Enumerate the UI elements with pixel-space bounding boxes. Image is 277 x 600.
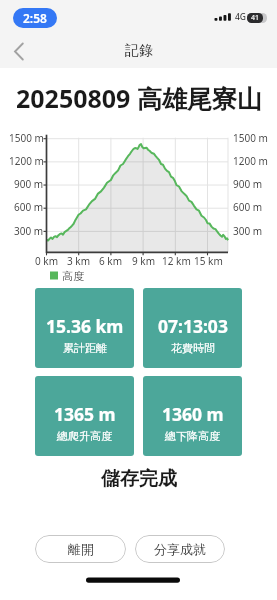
staticText: 600 m — [14, 200, 44, 214]
staticText: 1365 m — [54, 402, 116, 426]
button[interactable]: 07:13:03 — [143, 288, 242, 368]
staticText: 分享成就 — [154, 541, 206, 557]
staticText: 1500 m — [233, 131, 268, 145]
staticText: 20250809 高雄尾寮山 — [16, 81, 262, 115]
staticText: 1200 m — [9, 154, 44, 168]
staticText: 600 m — [233, 200, 263, 214]
button[interactable]: 分享成就 — [135, 535, 225, 563]
staticText: 高度 — [62, 269, 84, 283]
button[interactable]: 15.36 km — [35, 288, 134, 368]
staticText: 900 m — [233, 177, 263, 191]
button[interactable]: 離開 — [35, 535, 126, 563]
staticText: 6 km — [99, 254, 123, 268]
staticText: 3 km — [67, 254, 91, 268]
staticText: 累計距離 — [63, 341, 107, 355]
staticText: 記錄 — [125, 42, 153, 60]
staticText: 07:13:03 — [158, 314, 228, 338]
staticText: 2:58 — [23, 10, 47, 26]
staticText: 儲存完成 — [101, 467, 177, 491]
staticText: 15.36 km — [46, 314, 124, 338]
staticText: 900 m — [14, 177, 44, 191]
staticText: 300 m — [233, 224, 263, 238]
staticText: 15 km — [194, 254, 223, 268]
staticText: 花費時間 — [171, 341, 215, 355]
staticText: 9 km — [132, 254, 156, 268]
staticText: 1200 m — [233, 154, 268, 168]
button[interactable]: 1365 m — [35, 376, 134, 456]
staticText: 1500 m — [9, 131, 44, 145]
button[interactable] — [8, 37, 34, 62]
staticText: 總下降高度 — [165, 429, 220, 443]
staticText: 總爬升高度 — [57, 429, 112, 443]
staticText: 300 m — [14, 224, 44, 238]
button[interactable]: 2:58 — [13, 8, 57, 28]
staticText: 41 — [251, 13, 260, 23]
button[interactable]: 1360 m — [143, 376, 242, 456]
staticText: 0 km — [35, 254, 59, 268]
staticText: 離開 — [68, 541, 94, 557]
staticText: 4G — [235, 11, 247, 23]
staticText: 12 km — [162, 254, 191, 268]
staticText: 1360 m — [162, 402, 224, 426]
